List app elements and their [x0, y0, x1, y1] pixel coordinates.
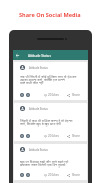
other: Back [15, 53, 20, 58]
staticText: 20 Likes [48, 134, 59, 138]
button[interactable]: Share to Facebook [26, 134, 30, 138]
button[interactable]: 20 Likes [44, 173, 59, 177]
button[interactable]: Share to WhatsApp [20, 173, 24, 177]
button[interactable]: Share to Facebook [26, 93, 30, 97]
staticText: Attitude Status [29, 148, 48, 152]
button[interactable]: Share to WhatsApp [20, 134, 24, 138]
staticText: 20 Likes [48, 93, 59, 97]
staticText: Share On Social Media [19, 11, 81, 19]
staticText: Attitude Status [29, 66, 48, 70]
button[interactable]: Back [13, 50, 88, 60]
staticText: Attitude Status [29, 107, 48, 111]
staticText: खुद पर विश्वास रखो और आगे बढ़ते रहो सफलत… [20, 159, 69, 167]
staticText: जब भी जिंदगी में कोई मुश्किल आए तो हँस क… [20, 74, 77, 85]
button[interactable]: Share [67, 93, 80, 97]
staticText: Share [72, 93, 80, 97]
button[interactable]: Attitude Status [14, 144, 87, 180]
button[interactable]: Share [67, 134, 80, 138]
button[interactable]: Share [67, 173, 80, 177]
button[interactable]: 20 Likes [44, 134, 59, 138]
button[interactable]: Attitude Status [14, 62, 87, 100]
button[interactable]: Share to Facebook [26, 173, 30, 177]
staticText: Share [72, 134, 80, 138]
staticText: 20 Likes [48, 173, 59, 177]
staticText: जिंदगी में कुछ भी हासिल करना है तो मेहनत… [20, 118, 73, 126]
button[interactable]: Attitude Status [14, 103, 87, 141]
staticText: Attitude Status [28, 53, 51, 57]
button[interactable]: Share to WhatsApp [20, 93, 24, 97]
button[interactable]: 20 Likes [44, 93, 59, 97]
staticText: Share [72, 173, 80, 177]
